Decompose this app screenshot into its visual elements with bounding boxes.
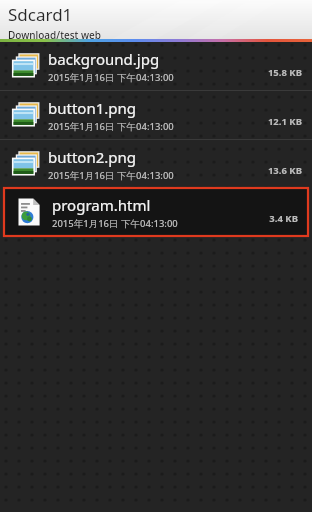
staticText: 2015年1月16日 下午04:13:00 xyxy=(52,217,178,230)
button[interactable]: button1.png xyxy=(0,91,312,139)
staticText: button2.png xyxy=(48,147,136,167)
staticText: 2015年1月16日 下午04:13:00 xyxy=(48,120,174,133)
staticText: 2015年1月16日 下午04:13:00 xyxy=(48,71,174,84)
staticText: 2015年1月16日 下午04:13:00 xyxy=(48,169,174,182)
staticText: Sdcard1 xyxy=(8,3,73,26)
button[interactable]: background.jpg xyxy=(0,42,312,90)
staticText: 15.8 KB xyxy=(267,66,302,79)
staticText: program.html xyxy=(52,195,151,215)
staticText: 13.6 KB xyxy=(267,164,302,177)
staticText: 12.1 KB xyxy=(267,115,302,128)
staticText: background.jpg xyxy=(48,49,160,69)
button[interactable]: program.html xyxy=(4,188,308,236)
staticText: button1.png xyxy=(48,98,136,118)
button[interactable]: button2.png xyxy=(0,140,312,188)
staticText: 3.4 KB xyxy=(269,212,298,225)
staticText: Download/test web xyxy=(8,28,102,39)
